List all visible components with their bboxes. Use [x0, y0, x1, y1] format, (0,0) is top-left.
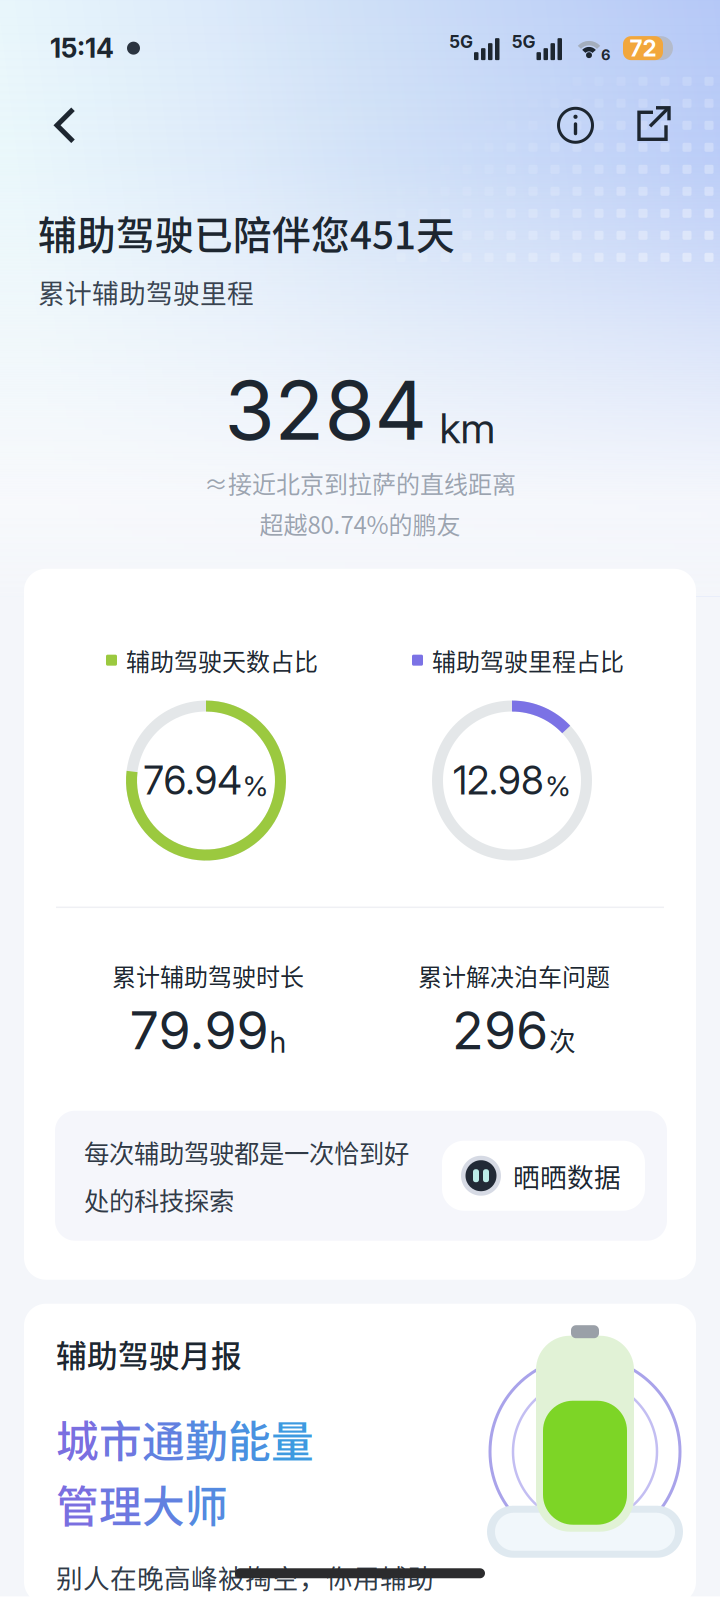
staticText: 累计解决泊车问题 [418, 958, 610, 993]
staticText: 5G [511, 31, 535, 52]
staticText: 79.99 [129, 999, 268, 1062]
staticText: 15:14 [50, 32, 114, 64]
staticText: 大 [142, 1473, 185, 1535]
button[interactable]: 辅助驾驶月报 [24, 1304, 696, 1600]
staticText: % [242, 769, 268, 803]
staticText: 每次辅助驾驶都是一次恰到好 [84, 1133, 409, 1170]
staticText: 能 [228, 1408, 271, 1470]
staticText: 次 [549, 1020, 576, 1059]
staticText: 通 [142, 1408, 185, 1470]
staticText: 别人在晚高峰被掏空，你用辅助 [56, 1558, 434, 1596]
staticText: 12.98 [453, 757, 544, 804]
staticText: 72 [629, 34, 656, 62]
staticText: 城 [56, 1408, 99, 1470]
staticText: 辅助驾驶月报 [56, 1332, 242, 1376]
staticText: 累计辅助驾驶里程 [38, 272, 254, 311]
staticText: % [545, 769, 571, 803]
staticText: 辅助驾驶里程占比 [432, 643, 624, 678]
button[interactable]: Back [32, 94, 98, 156]
staticText: 76.94 [143, 757, 241, 804]
staticText: h [269, 1024, 286, 1060]
staticText: km [439, 403, 495, 453]
staticText: 管 [56, 1473, 99, 1535]
button[interactable]: Share [627, 95, 679, 155]
staticText: 处的科技探索 [84, 1181, 234, 1218]
staticText: 理 [99, 1473, 142, 1535]
button[interactable]: 晒晒数据 [442, 1141, 645, 1211]
staticText: 296 [452, 999, 548, 1062]
staticText: 超越80.74%的鹏友 [259, 506, 460, 541]
staticText: 量 [271, 1408, 314, 1470]
staticText: 辅助驾驶已陪伴您451天 [38, 204, 455, 260]
staticText: 累计辅助驾驶时长 [112, 958, 304, 993]
staticText: 6 [601, 46, 611, 64]
staticText: 5G [449, 31, 473, 52]
staticText: 3284 [224, 361, 427, 459]
staticText: 市 [99, 1408, 142, 1470]
staticText: 辅助驾驶天数占比 [126, 643, 318, 678]
staticText: ≈接近北京到拉萨的直线距离 [204, 465, 516, 500]
staticText: 师 [185, 1473, 228, 1535]
staticText: 勤 [185, 1408, 228, 1470]
staticText: 晒晒数据 [513, 1156, 621, 1195]
button[interactable]: Info [551, 95, 600, 155]
